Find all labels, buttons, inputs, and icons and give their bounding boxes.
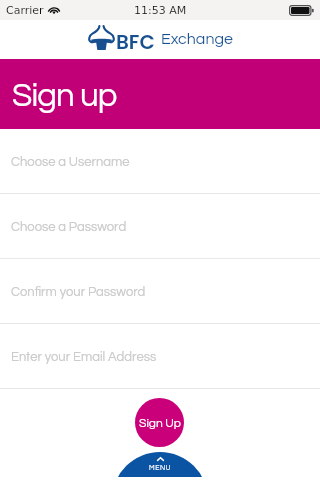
staticText: 11:53 AM <box>134 4 187 17</box>
staticText: Sign up <box>12 79 117 113</box>
staticText: Sign Up <box>139 417 181 429</box>
button[interactable]: Confirm your Password <box>0 259 320 324</box>
staticText: Enter your Email Address <box>11 350 157 363</box>
staticText: Exchange <box>161 31 233 47</box>
button[interactable]: Enter your Email Address <box>0 324 320 389</box>
button[interactable]: Choose a Username <box>0 129 320 194</box>
staticText: Choose a Username <box>11 155 130 168</box>
button[interactable]: Choose a Password <box>0 194 320 259</box>
button[interactable]: Menu <box>112 452 208 480</box>
staticText: BFC <box>116 28 155 56</box>
staticText: Confirm your Password <box>11 285 146 298</box>
staticText: Choose a Password <box>11 220 127 233</box>
staticText: Carrier <box>6 4 44 17</box>
button[interactable]: Sign Up <box>135 398 184 447</box>
staticText: MENU <box>112 464 208 471</box>
